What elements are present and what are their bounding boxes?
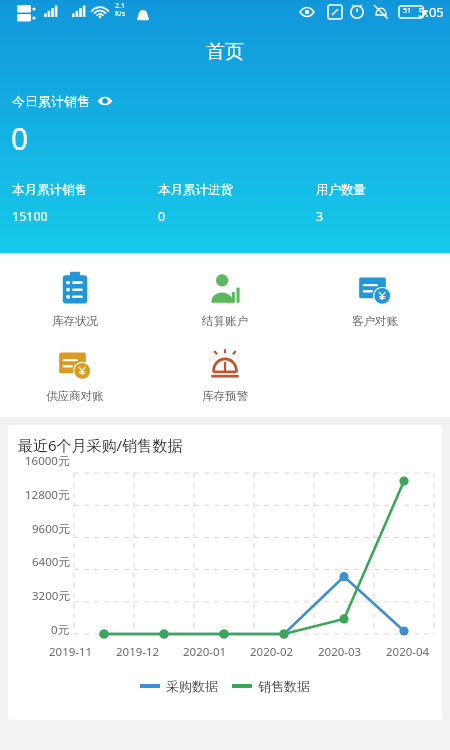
staticText: 3 <box>316 208 324 225</box>
staticText: 51 <box>403 6 412 16</box>
staticText: 5:05 <box>418 3 444 21</box>
staticText: 16000元 <box>25 453 70 469</box>
button[interactable]: 库存状况 <box>44 269 106 330</box>
button[interactable]: 显示/隐藏金额 <box>96 92 114 110</box>
button[interactable]: 采购数据 <box>140 678 218 694</box>
staticText: 12800元 <box>25 487 70 503</box>
staticText: 供应商对账 <box>46 389 104 403</box>
staticText: 结算账户 <box>202 314 248 328</box>
staticText: 本月累计销售 <box>12 182 87 198</box>
staticText: 2019-11 <box>49 644 93 660</box>
staticText: 2020-03 <box>318 644 362 660</box>
button[interactable]: 客户对账 <box>344 269 406 330</box>
staticText: 本月累计进货 <box>158 182 233 198</box>
staticText: 0 <box>158 208 166 225</box>
staticText: 2020-02 <box>250 644 294 660</box>
staticText: 3200元 <box>32 588 70 604</box>
staticText: 2.1 K/s <box>115 1 126 18</box>
staticText: 库存状况 <box>52 314 98 328</box>
staticText: 客户对账 <box>352 314 398 328</box>
staticText: 销售数据 <box>258 678 310 694</box>
staticText: 9600元 <box>32 521 70 537</box>
staticText: 用户数量 <box>316 182 366 198</box>
staticText: 最近6个月采购/销售数据 <box>18 435 183 455</box>
staticText: 0元 <box>51 622 70 638</box>
staticText: 采购数据 <box>166 678 218 694</box>
staticText: 2020-01 <box>183 644 227 660</box>
staticText: 首页 <box>206 40 244 64</box>
staticText: 今日累计销售 <box>12 93 90 109</box>
button[interactable]: 销售数据 <box>232 678 310 694</box>
staticText: 2020-04 <box>386 644 430 660</box>
staticText: 0 <box>11 118 29 159</box>
staticText: 15100 <box>12 208 48 225</box>
staticText: 6400元 <box>32 554 70 570</box>
button[interactable]: 结算账户 <box>194 269 256 330</box>
staticText: 库存预警 <box>202 389 248 403</box>
button[interactable]: 供应商对账 <box>38 344 112 405</box>
staticText: 2019-12 <box>116 644 160 660</box>
button[interactable]: 库存预警 <box>194 344 256 405</box>
